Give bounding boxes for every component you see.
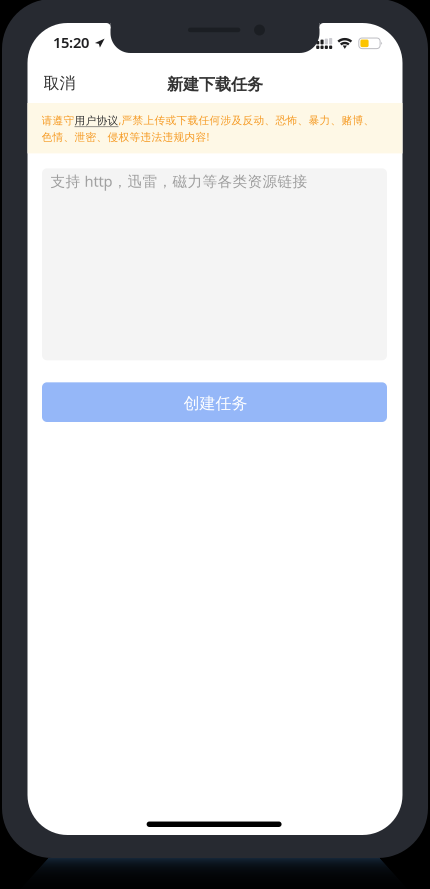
staticText: 用户协议 [74, 114, 118, 127]
staticText: 创建任务 [183, 393, 247, 413]
button[interactable]: 支持 http，迅雷，磁力等各类资源链接 [42, 168, 387, 360]
staticText: 色情、泄密、侵权等违法违规内容! [41, 130, 209, 144]
staticText: 支持 http，迅雷，磁力等各类资源链接 [50, 171, 307, 191]
staticText: ,严禁上传或下载任何涉及反动、恐怖、暴力、赌博、 [118, 113, 374, 127]
staticText: 取消 [43, 73, 75, 93]
staticText: 15:20 [53, 33, 89, 52]
button[interactable]: 取消 [27, 65, 92, 101]
button[interactable]: 创建任务 [42, 382, 387, 422]
staticText: 新建下载任务 [167, 74, 263, 94]
staticText: 请遵守 [41, 114, 74, 127]
button[interactable]: 用户协议 [74, 114, 118, 127]
